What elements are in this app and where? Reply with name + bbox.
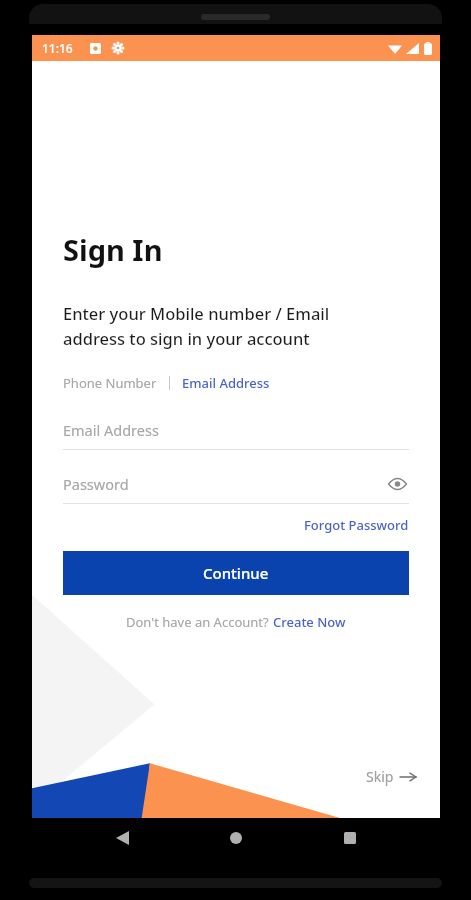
staticText: Skip [366, 767, 394, 786]
button[interactable]: Back [108, 824, 136, 852]
staticText: Forgot Password [304, 516, 409, 534]
staticText: Continue [203, 563, 269, 583]
button[interactable]: Skip [366, 767, 416, 786]
button[interactable]: Home [222, 824, 250, 852]
staticText: 11:16 [42, 40, 73, 56]
button[interactable]: Phone Number [63, 374, 157, 392]
button[interactable]: Continue [63, 551, 409, 595]
button[interactable]: Create Now [273, 613, 346, 631]
staticText: Sign In [63, 230, 163, 269]
button[interactable]: Email Address [182, 374, 270, 392]
staticText: Phone Number [63, 374, 157, 392]
staticText: Email Address [182, 374, 270, 392]
button[interactable]: Email Address [63, 420, 409, 450]
button[interactable]: Recent apps [336, 824, 364, 852]
button[interactable]: Password [63, 472, 409, 504]
staticText: Password [63, 474, 385, 494]
button[interactable]: Show password [385, 472, 409, 496]
button[interactable]: Forgot Password [304, 516, 409, 534]
staticText: Enter your Mobile number / Email address… [63, 302, 330, 349]
staticText: Create Now [273, 613, 346, 631]
staticText: Don't have an Account? [126, 613, 273, 631]
staticText: Email Address [63, 420, 159, 440]
